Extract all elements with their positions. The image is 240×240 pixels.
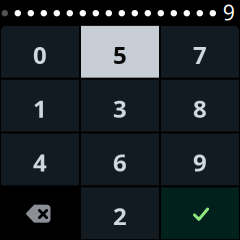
staticText: 2 [113,200,127,232]
button[interactable]: 5 [81,26,159,78]
staticText: 1 [33,92,47,124]
button[interactable]: Delete [1,187,79,239]
button[interactable]: 7 [161,26,239,78]
button[interactable]: 3 [81,80,159,131]
button[interactable]: 8 [161,80,239,131]
staticText: 6 [113,146,127,178]
button[interactable]: 1 [1,80,79,131]
staticText: 0 [33,39,47,71]
button[interactable]: 9 [161,133,239,185]
staticText: 9 [193,146,207,178]
staticText: 5 [113,39,127,71]
button[interactable]: 6 [81,133,159,185]
staticText: 8 [193,92,207,124]
button[interactable]: 4 [1,133,79,185]
staticText: 7 [193,39,207,71]
staticText: 3 [113,92,127,124]
staticText: 9 [223,0,235,26]
button[interactable]: 0 [1,26,79,78]
button[interactable]: 2 [81,187,159,239]
button[interactable]: Confirm passcode [161,187,239,239]
staticText: 4 [33,146,47,178]
